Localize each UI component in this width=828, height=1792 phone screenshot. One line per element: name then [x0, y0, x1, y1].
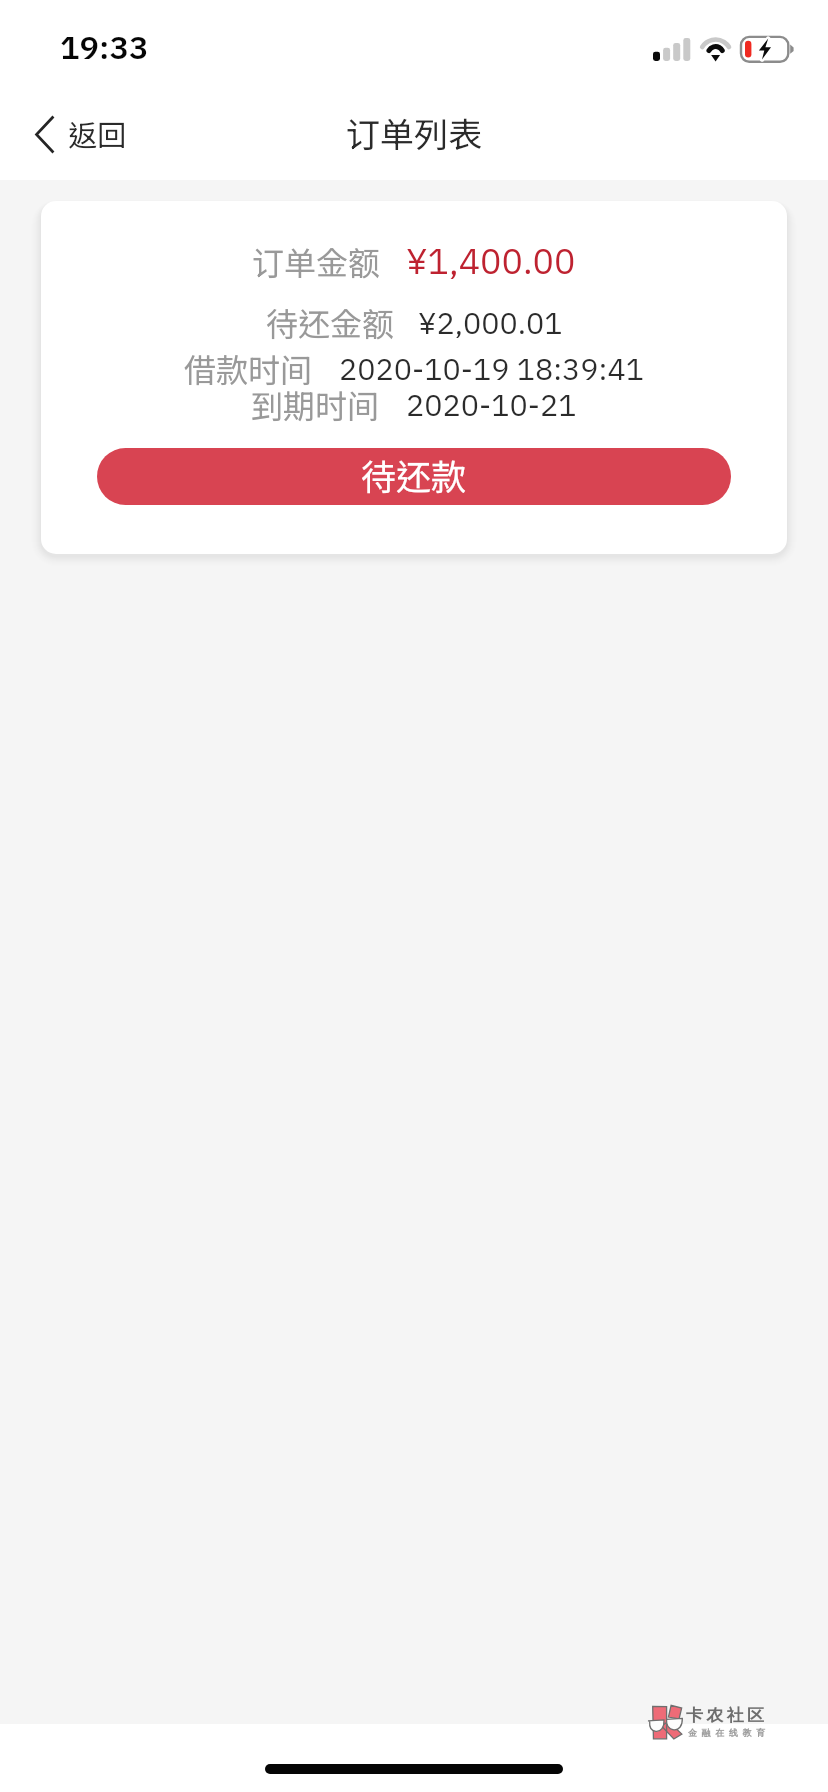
- staticText: 19:33: [60, 26, 149, 72]
- button[interactable]: [41, 201, 787, 554]
- staticText: 到期时间: [251, 387, 380, 425]
- button[interactable]: 返回: [16, 88, 151, 180]
- staticText: 借款时间: [184, 351, 313, 389]
- staticText: ¥2,000.01: [418, 303, 563, 346]
- staticText: 返回: [68, 118, 127, 152]
- staticText: 2020-10-21: [406, 385, 577, 428]
- staticText: 待还金额: [266, 305, 395, 343]
- staticText: ¥1,400.00: [406, 238, 576, 289]
- staticText: 订单金额: [252, 244, 381, 282]
- staticText: 订单列表: [346, 114, 482, 154]
- other: 返回: [35, 116, 54, 153]
- staticText: 金融在线教育: [688, 1727, 770, 1738]
- staticText: 2020-10-19 18:39:41: [339, 349, 645, 392]
- button[interactable]: 待还款: [97, 448, 731, 505]
- staticText: 卡农社区: [686, 1705, 768, 1726]
- staticText: 待还款: [361, 456, 467, 497]
